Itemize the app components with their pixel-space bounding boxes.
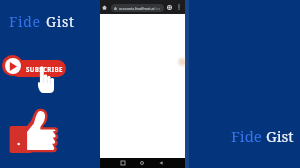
staticText: SUBSCRIBE xyxy=(26,65,63,73)
button[interactable]: More options xyxy=(175,0,183,14)
button[interactable]: accounts.fowlfront.ai xyxy=(111,4,164,12)
staticText: Fide xyxy=(9,12,46,31)
button[interactable]: Home xyxy=(139,158,145,168)
staticText: /os xyxy=(155,6,161,11)
staticText: Gist xyxy=(266,126,294,146)
staticText: Fide xyxy=(231,126,266,146)
button[interactable]: SUBSCRIBE xyxy=(2,54,66,76)
button[interactable]: Recent apps xyxy=(120,158,126,168)
button[interactable]: Back xyxy=(158,158,164,168)
staticText: Gist xyxy=(46,12,75,31)
button[interactable]: Home xyxy=(101,0,108,14)
staticText: accounts.fowlfront.ai xyxy=(119,6,155,11)
button[interactable]: Switch tabs xyxy=(165,0,173,14)
